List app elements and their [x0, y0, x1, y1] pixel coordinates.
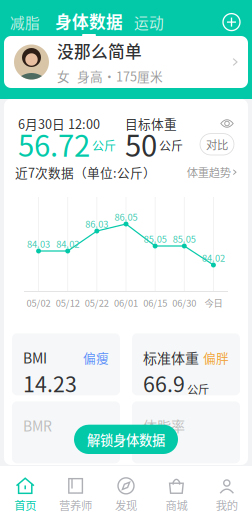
- staticText: 解锁身体数据: [87, 430, 165, 449]
- staticText: 公斤: [92, 137, 116, 154]
- staticText: 我的: [216, 497, 238, 513]
- staticText: 目标体重: [125, 114, 177, 133]
- staticText: 50: [125, 123, 157, 165]
- staticText: 对比: [206, 136, 228, 152]
- staticText: 女: [57, 67, 70, 85]
- staticText: 6月30日 12:00: [18, 114, 100, 133]
- staticText: 85.05: [173, 232, 196, 245]
- staticText: 商城: [165, 497, 187, 513]
- staticText: 没那么简单: [57, 39, 142, 63]
- button[interactable]: Toggle visibility: [220, 117, 234, 129]
- staticText: 近7次数据（单位:公斤）: [15, 163, 156, 181]
- staticText: BMI: [23, 347, 47, 368]
- staticText: 86.05: [114, 210, 137, 223]
- staticText: BMR: [23, 415, 52, 436]
- button[interactable]: 发现: [101, 471, 151, 518]
- staticText: 84.02: [56, 237, 79, 250]
- staticText: 减脂: [10, 11, 40, 33]
- button[interactable]: 对比: [200, 134, 234, 157]
- staticText: 84.03: [27, 237, 50, 250]
- staticText: 营养师: [59, 497, 92, 513]
- staticText: 84.02: [202, 251, 225, 264]
- staticText: 体脂率: [143, 415, 185, 436]
- staticText: 86.03: [85, 217, 108, 230]
- staticText: 05/02: [27, 296, 51, 309]
- staticText: 公斤: [187, 381, 209, 397]
- staticText: 06/01: [114, 296, 138, 309]
- button[interactable]: 身体数据: [55, 8, 123, 36]
- button[interactable]: 商城: [151, 471, 202, 518]
- button[interactable]: Add: [222, 13, 241, 32]
- staticText: 发现: [115, 497, 137, 513]
- button[interactable]: 运动: [134, 9, 164, 35]
- staticText: 06/15: [143, 296, 167, 309]
- staticText: 85.05: [144, 232, 167, 245]
- staticText: 标准体重: [143, 347, 199, 368]
- staticText: 14.23: [23, 368, 77, 398]
- button[interactable]: 解锁身体数据: [74, 425, 178, 454]
- staticText: 身体数据: [55, 9, 123, 33]
- staticText: 56.72: [18, 123, 90, 165]
- staticText: 偏胖: [203, 348, 229, 367]
- button[interactable]: 营养师: [50, 471, 101, 518]
- button[interactable]: 首页: [0, 471, 50, 518]
- staticText: 身高·175厘米: [77, 67, 163, 85]
- button[interactable]: 减脂: [10, 9, 40, 35]
- staticText: 体重趋势: [187, 164, 231, 180]
- staticText: 运动: [134, 11, 164, 33]
- staticText: 今日: [204, 296, 222, 309]
- staticText: 首页: [14, 497, 36, 513]
- staticText: 公斤: [159, 137, 183, 154]
- button[interactable]: 我的: [202, 471, 252, 518]
- staticText: 06/30: [172, 296, 196, 309]
- staticText: 05/12: [56, 296, 80, 309]
- staticText: 偏瘦: [83, 348, 109, 367]
- button[interactable]: 体重趋势: [187, 164, 237, 180]
- staticText: 66.9: [143, 368, 185, 398]
- staticText: 05/22: [85, 296, 109, 309]
- button[interactable]: 没那么简单: [4, 36, 248, 88]
